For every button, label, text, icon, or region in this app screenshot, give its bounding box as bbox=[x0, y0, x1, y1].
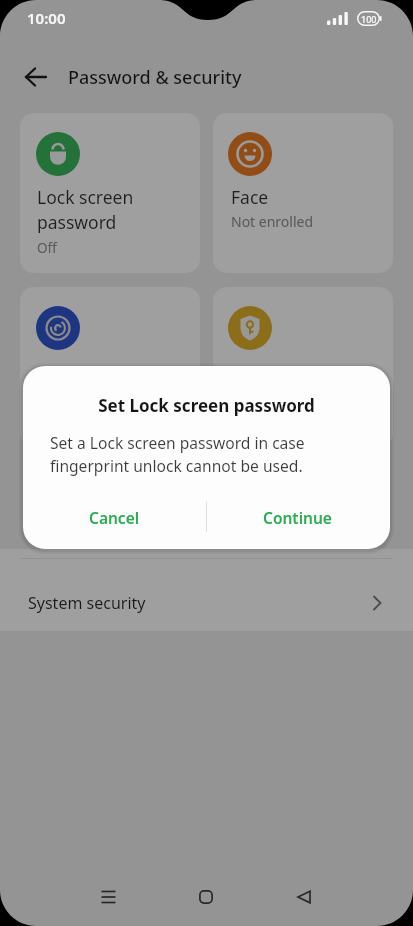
button[interactable]: Lock screen password bbox=[20, 113, 200, 273]
button[interactable]: Face bbox=[213, 113, 393, 273]
staticText: Off bbox=[37, 239, 57, 257]
staticText: Set Lock screen password bbox=[98, 394, 315, 417]
button[interactable]: System security bbox=[0, 549, 413, 631]
staticText: Lock screen password bbox=[37, 185, 134, 234]
button[interactable] bbox=[101, 890, 116, 904]
button[interactable] bbox=[213, 287, 393, 447]
staticText: Continue bbox=[263, 507, 332, 528]
staticText: 10:00 bbox=[27, 8, 66, 28]
staticText: 100 bbox=[361, 13, 377, 25]
button[interactable]: Continue bbox=[237, 495, 357, 539]
button[interactable] bbox=[20, 287, 200, 447]
staticText: Face bbox=[231, 185, 269, 209]
button[interactable] bbox=[199, 890, 213, 904]
staticText: Cancel bbox=[89, 507, 140, 528]
button[interactable]: Cancel bbox=[54, 495, 174, 539]
button[interactable] bbox=[296, 890, 312, 904]
staticText: Not enrolled bbox=[231, 212, 314, 231]
staticText: System security bbox=[28, 592, 146, 614]
staticText: Password & security bbox=[68, 65, 242, 90]
staticText: Set a Lock screen password in case finge… bbox=[50, 432, 305, 476]
